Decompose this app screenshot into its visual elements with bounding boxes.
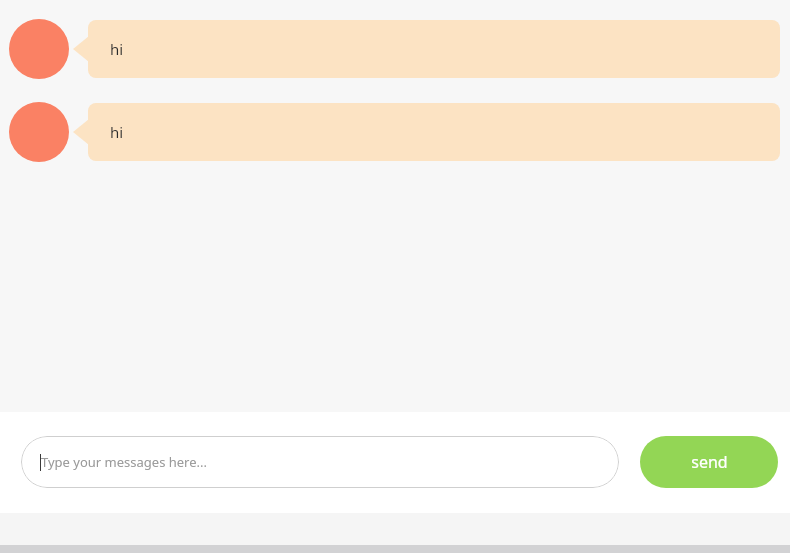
staticText: Type your messages here... [41,453,208,471]
staticText: send [691,451,728,473]
button[interactable]: Contact avatar [0,102,790,162]
staticText: hi [110,122,124,142]
other: Contact avatar [9,102,69,162]
staticText: hi [110,39,124,59]
button[interactable]: Contact avatar [0,19,790,79]
button[interactable]: send [640,436,778,488]
other: Contact avatar [9,19,69,79]
button[interactable]: Type your messages here... [21,436,619,488]
